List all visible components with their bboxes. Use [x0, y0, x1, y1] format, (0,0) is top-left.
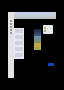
button[interactable]: Nav item 4 — [8, 31, 14, 34]
button[interactable] — [34, 36, 41, 43]
button[interactable] — [8, 12, 56, 19]
button[interactable] — [43, 25, 53, 34]
button[interactable]: Nav item 0 — [8, 19, 14, 22]
button[interactable] — [34, 43, 41, 50]
button[interactable]: Nav item 1 — [8, 22, 14, 25]
button[interactable] — [34, 29, 41, 36]
button[interactable]: Primary action — [48, 63, 54, 66]
button[interactable]: Nav item 2 — [8, 25, 14, 28]
button[interactable]: Nav item 3 — [8, 28, 14, 31]
